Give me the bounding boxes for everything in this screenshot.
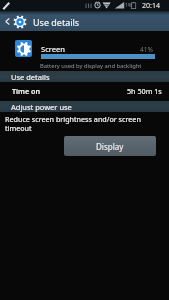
button[interactable]: Back — [0, 11, 14, 31]
staticText: Use details — [33, 16, 80, 28]
staticText: 5h 50m 1s — [127, 86, 162, 96]
staticText: 20:14 — [142, 1, 160, 11]
staticText: Screen — [41, 44, 66, 54]
staticText: Reduce screen brightness and/or screen t… — [5, 114, 141, 133]
staticText: 1% — [125, 2, 133, 9]
staticText: Battery used by display and backlight — [40, 62, 142, 70]
staticText: 41% — [140, 45, 153, 54]
button[interactable]: Display — [64, 136, 156, 156]
staticText: Display — [96, 141, 124, 152]
staticText: Adjust power use — [11, 102, 72, 112]
staticText: Time on — [12, 86, 41, 96]
staticText: Use details — [11, 72, 50, 82]
button[interactable]: Time on — [0, 81, 169, 100]
